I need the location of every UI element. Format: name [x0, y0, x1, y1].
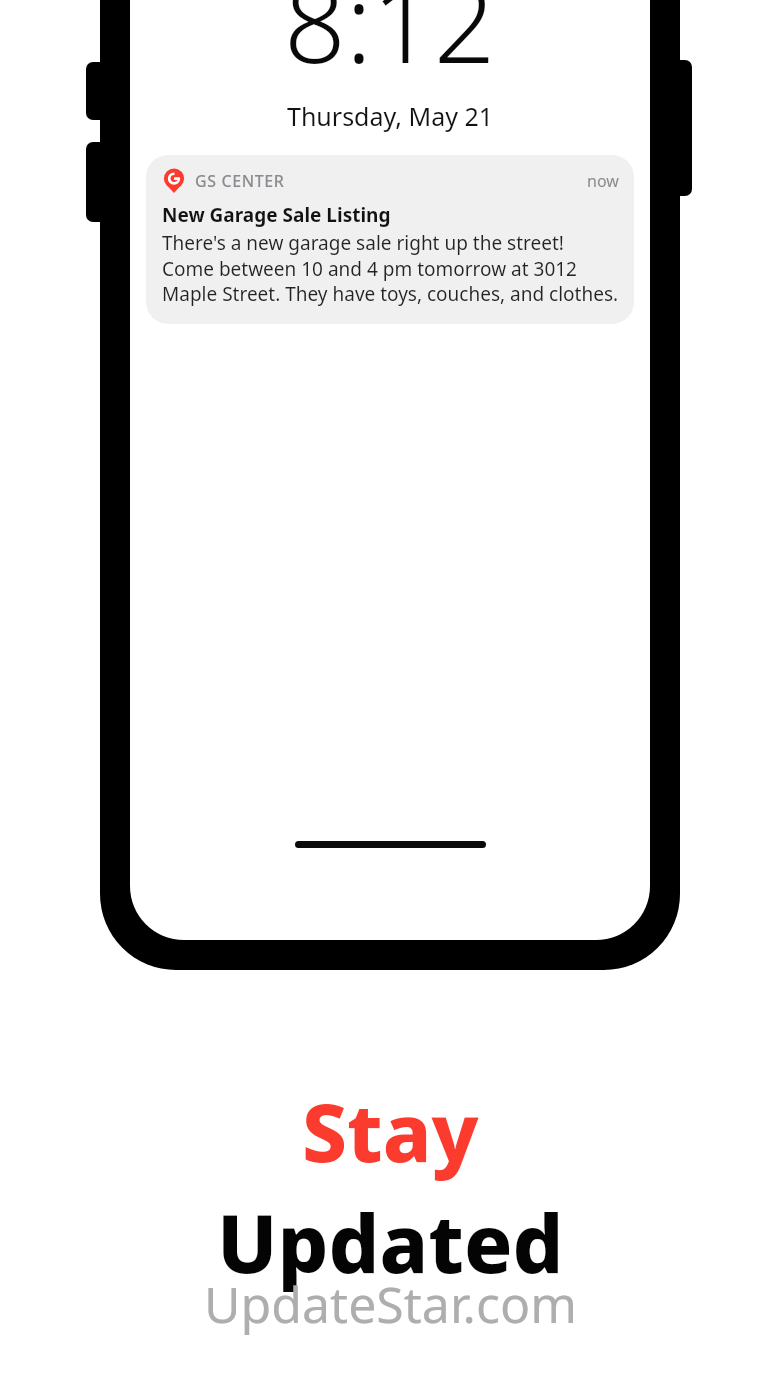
staticText: Stay — [302, 1076, 479, 1185]
staticText: There's a new garage sale right up the s… — [162, 230, 619, 306]
staticText: 8:12 — [284, 0, 496, 95]
staticText: UpdateStar.com — [204, 1270, 577, 1338]
staticText: Thursday, May 21 — [287, 99, 494, 133]
staticText: New Garage Sale Listing — [162, 202, 391, 228]
button[interactable]: GS Center — [146, 155, 634, 324]
staticText: GS CENTER — [195, 170, 285, 192]
staticText: now — [587, 170, 619, 192]
other: GS Center — [162, 169, 186, 193]
staticText: Updated — [217, 1187, 564, 1296]
